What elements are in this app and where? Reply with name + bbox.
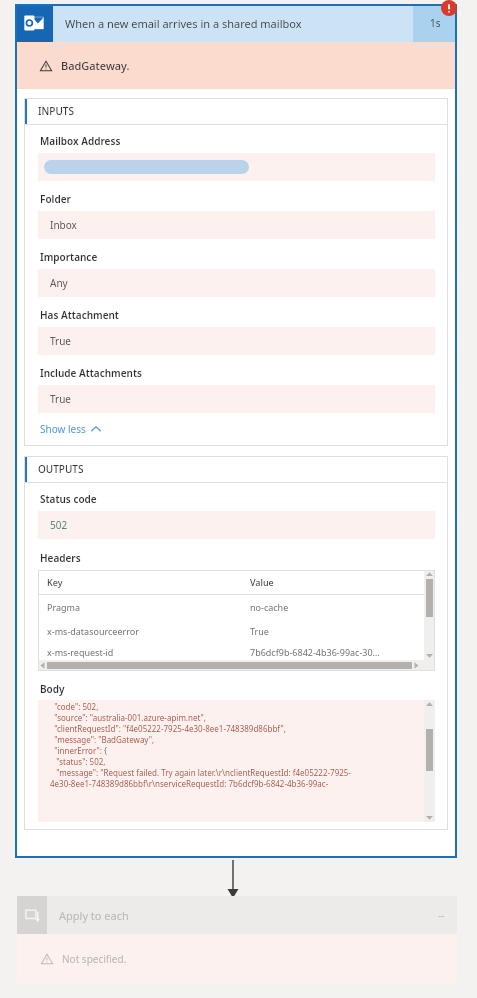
- staticText: Key: [47, 576, 250, 588]
- staticText: Not specified.: [62, 952, 127, 966]
- staticText: Apply to each: [59, 908, 425, 923]
- staticText: Mailbox Address: [40, 134, 121, 148]
- staticText: Status code: [40, 492, 97, 506]
- staticText: Any: [50, 276, 68, 290]
- staticText: Importance: [40, 250, 98, 264]
- staticText: "source": "australia-001.azure-apim.net"…: [50, 712, 206, 723]
- button[interactable]: OUTPUTS: [24, 456, 448, 482]
- staticText: True: [50, 392, 72, 406]
- staticText: OUTPUTS: [38, 462, 84, 476]
- staticText: no-cache: [250, 601, 424, 613]
- button[interactable]: Any: [38, 269, 435, 297]
- staticText: "clientRequestId": "f4e05222-7925-4e30-8…: [50, 723, 286, 734]
- staticText: --: [438, 908, 445, 922]
- button[interactable]: Inbox: [38, 211, 435, 239]
- staticText: 502: [50, 518, 68, 532]
- staticText: When a new email arrives in a shared mai…: [65, 16, 413, 31]
- staticText: Value: [250, 576, 424, 588]
- staticText: "message": "Request failed. Try again la…: [50, 767, 351, 778]
- staticText: "code": 502,: [50, 701, 99, 712]
- staticText: "innerError": {: [50, 745, 108, 756]
- staticText: Include Attachments: [40, 366, 142, 380]
- staticText: True: [50, 334, 72, 348]
- staticText: Pragma: [47, 601, 250, 613]
- staticText: "message": "BadGateway",: [50, 734, 155, 745]
- button[interactable]: True: [38, 327, 435, 355]
- button[interactable]: Apply to each: [17, 896, 457, 983]
- button[interactable]: 502: [38, 511, 435, 539]
- staticText: x-ms-request-id: [47, 646, 250, 658]
- staticText: BadGateway.: [61, 58, 130, 73]
- button[interactable]: Key: [38, 570, 435, 671]
- button[interactable]: "code": 502,: [38, 700, 435, 822]
- staticText: Folder: [40, 192, 71, 206]
- button[interactable]: Error: [441, 0, 457, 16]
- staticText: Show less: [40, 422, 86, 436]
- button[interactable]: [38, 153, 435, 181]
- staticText: Body: [40, 682, 65, 696]
- staticText: INPUTS: [38, 104, 74, 118]
- staticText: x-ms-datasourceerror: [47, 625, 250, 637]
- staticText: True: [250, 625, 424, 637]
- button[interactable]: INPUTS: [24, 98, 448, 124]
- staticText: Headers: [40, 551, 81, 565]
- staticText: Inbox: [50, 218, 77, 232]
- staticText: "status": 502,: [50, 756, 106, 767]
- staticText: 1s: [430, 16, 441, 30]
- button[interactable]: When a new email arrives in a shared mai…: [15, 4, 457, 42]
- staticText: 7b6dcf9b-6842-4b36-99ac-30…: [250, 646, 424, 658]
- button[interactable]: Show less: [38, 422, 101, 436]
- staticText: Has Attachment: [40, 308, 119, 322]
- button[interactable]: True: [38, 385, 435, 413]
- staticText: 4e30-8ee1-748389d86bbf\r\nserviceRequest…: [50, 778, 329, 789]
